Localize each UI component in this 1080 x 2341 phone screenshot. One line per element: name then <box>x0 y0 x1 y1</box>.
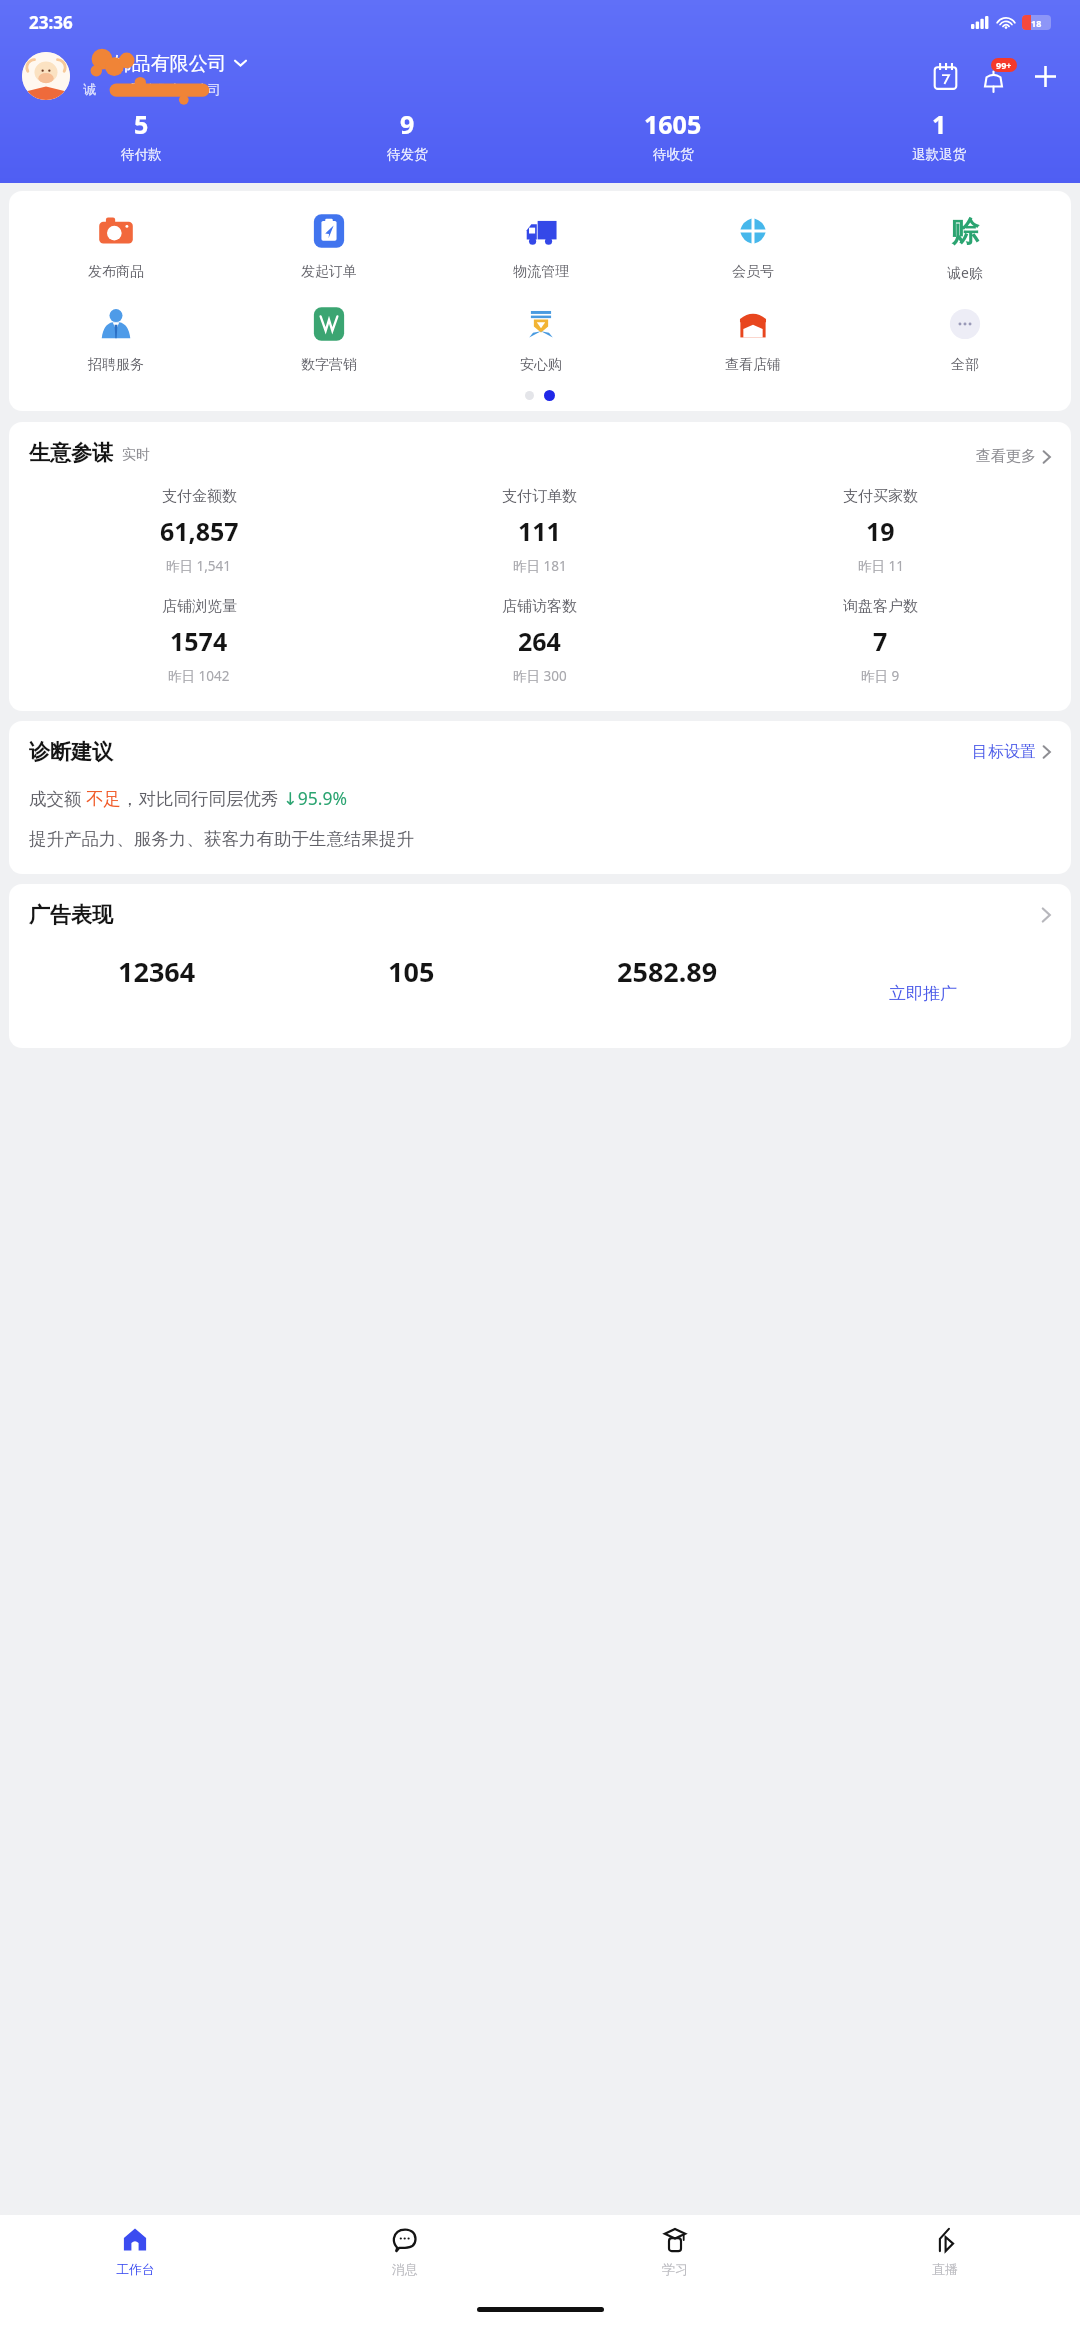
staticText: 发起订单 <box>301 263 357 281</box>
staticText: 店铺浏览量 <box>162 597 237 616</box>
staticText: 询盘客户数 <box>843 597 918 616</box>
staticText: 1 <box>932 107 947 141</box>
staticText: 5 <box>134 107 149 141</box>
staticText: 学习 <box>662 2261 688 2277</box>
staticText: 目标设置 <box>972 742 1036 762</box>
staticText: 昨日 300 <box>513 667 567 685</box>
staticText: 昨日 1,541 <box>166 557 232 575</box>
staticText: 全部 <box>951 356 979 374</box>
staticText: 会员号 <box>732 263 774 281</box>
staticText: 诚e赊 <box>947 263 983 282</box>
staticText: 111 <box>518 514 561 548</box>
staticText: 7 <box>873 624 888 658</box>
staticText: 支付金额数 <box>162 487 237 506</box>
button[interactable]: 安心购 <box>435 302 647 374</box>
other: Open ad performance <box>1041 906 1051 924</box>
staticText: 发布商品 <box>88 263 144 281</box>
staticText: 诊断建议 <box>29 739 113 765</box>
button[interactable]: 学习 <box>540 2215 810 2293</box>
button[interactable]: 查看更多 <box>976 447 1051 466</box>
button[interactable]: 店铺访客数 <box>369 597 710 685</box>
staticText: 消息 <box>392 2261 418 2277</box>
staticText: 饰品有限公司 <box>83 50 227 76</box>
staticText: 成交额 不足，对比同行同层优秀 ↓95.9% <box>29 786 348 810</box>
button[interactable]: 发起订单 <box>222 209 435 281</box>
button[interactable]: 查看店铺 <box>647 302 859 374</box>
staticText: 23:36 <box>29 11 73 34</box>
staticText: 诚 晨饰品有限公司 <box>83 80 221 98</box>
button[interactable]: 工作台 <box>0 2215 270 2293</box>
staticText: 物流管理 <box>513 263 569 281</box>
button[interactable]: Account avatar <box>22 52 70 100</box>
button[interactable]: 全部 <box>859 302 1071 374</box>
staticText: 广告表现 <box>29 902 113 928</box>
staticText: 9 <box>400 107 415 141</box>
staticText: 查看店铺 <box>725 356 781 374</box>
staticText: 待发货 <box>387 146 428 163</box>
button[interactable]: Add <box>1033 64 1058 89</box>
button[interactable]: Notifications <box>981 58 1017 94</box>
staticText: 99+ <box>996 59 1012 71</box>
staticText: 12364 <box>118 953 196 990</box>
button[interactable]: 支付金额数 <box>29 487 369 575</box>
button[interactable]: 直播 <box>810 2215 1080 2293</box>
staticText: 赊 <box>951 214 979 249</box>
staticText: 1605 <box>644 107 702 141</box>
staticText: 工作台 <box>116 2261 155 2277</box>
staticText: 264 <box>518 624 561 658</box>
staticText: 立即推广 <box>889 983 957 1004</box>
staticText: 待付款 <box>121 146 162 163</box>
button[interactable]: 支付订单数 <box>369 487 710 575</box>
button[interactable]: 立即推广 <box>795 969 1051 990</box>
staticText: 待收货 <box>653 146 694 163</box>
staticText: 18 <box>1031 17 1042 29</box>
staticText: 昨日 181 <box>513 557 567 575</box>
staticText: 查看更多 <box>976 447 1036 466</box>
staticText: 支付买家数 <box>843 487 918 506</box>
staticText: 退款退货 <box>912 146 966 163</box>
button[interactable]: 1 <box>806 107 1072 163</box>
staticText: 数字营销 <box>301 356 357 374</box>
button[interactable]: 赊 <box>859 209 1071 282</box>
staticText: 安心购 <box>520 356 562 374</box>
button[interactable]: 饰品有限公司 <box>83 50 247 76</box>
staticText: 昨日 11 <box>858 557 904 575</box>
button[interactable]: 目标设置 <box>972 742 1051 762</box>
staticText: 105 <box>388 953 435 990</box>
button[interactable]: 支付买家数 <box>710 487 1051 575</box>
staticText: 实时 <box>122 446 150 464</box>
button[interactable]: 数字营销 <box>222 302 435 374</box>
button[interactable]: 物流管理 <box>435 209 647 281</box>
button[interactable]: 会员号 <box>647 209 859 281</box>
button[interactable]: 店铺浏览量 <box>29 597 369 685</box>
staticText: 1574 <box>170 624 228 658</box>
staticText: 支付订单数 <box>502 487 577 506</box>
button[interactable]: 消息 <box>270 2215 540 2293</box>
button[interactable]: 招聘服务 <box>9 302 222 374</box>
button[interactable]: 5 <box>8 107 274 163</box>
button[interactable]: Calendar <box>932 63 959 90</box>
button[interactable]: 询盘客户数 <box>710 597 1051 685</box>
staticText: 店铺访客数 <box>502 597 577 616</box>
button[interactable]: 发布商品 <box>9 209 222 281</box>
button[interactable]: 9 <box>274 107 540 163</box>
staticText: 2582.89 <box>617 953 718 990</box>
staticText: 19 <box>866 514 895 548</box>
staticText: 提升产品力、服务力、获客力有助于生意结果提升 <box>29 828 414 850</box>
button[interactable]: 1605 <box>540 107 806 163</box>
staticText: 直播 <box>932 2261 958 2277</box>
staticText: 招聘服务 <box>88 356 144 374</box>
staticText: 昨日 1042 <box>168 667 230 685</box>
staticText: 生意参谋 <box>29 440 113 466</box>
button[interactable]: 广告表现 <box>29 902 1051 928</box>
staticText: 昨日 9 <box>861 667 900 685</box>
staticText: 61,857 <box>160 514 239 548</box>
